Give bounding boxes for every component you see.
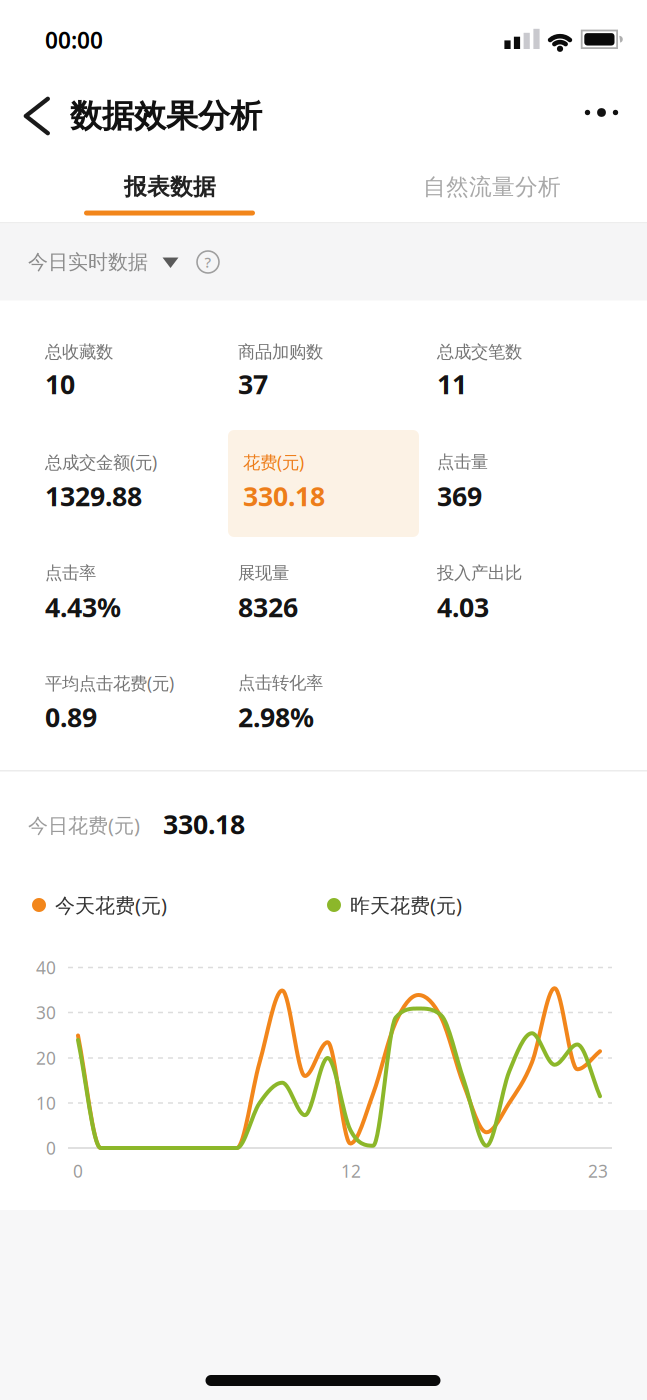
staticText: 总成交金额(元) xyxy=(45,450,157,473)
staticText: 2.98% xyxy=(238,699,314,735)
staticText: 投入产出比 xyxy=(437,562,522,584)
staticText: 1329.88 xyxy=(45,478,142,514)
staticText: 37 xyxy=(238,366,268,402)
button[interactable] xyxy=(9,86,69,146)
staticText: 展现量 xyxy=(238,562,289,584)
staticText: 花费(元) xyxy=(243,450,304,473)
staticText: 40 xyxy=(36,956,56,979)
staticText: 330.18 xyxy=(243,478,325,514)
button[interactable]: 今日实时数据 xyxy=(28,241,188,283)
staticText: 330.18 xyxy=(163,806,245,842)
staticText: 平均点击花费(元) xyxy=(45,671,174,694)
staticText: 4.43% xyxy=(45,589,121,625)
staticText: 10 xyxy=(45,366,75,402)
staticText: 今日花费(元) xyxy=(28,812,140,838)
staticText: 总成交笔数 xyxy=(437,341,522,363)
staticText: 0 xyxy=(46,1136,56,1159)
staticText: 23 xyxy=(588,1159,608,1182)
staticText: 12 xyxy=(341,1159,361,1182)
staticText: 自然流量分析 xyxy=(423,173,561,201)
button[interactable]: ? xyxy=(193,247,223,277)
staticText: 今天花费(元) xyxy=(55,892,167,918)
staticText: 点击率 xyxy=(45,562,96,584)
staticText: 369 xyxy=(437,478,482,514)
staticText: 10 xyxy=(36,1091,56,1114)
staticText: 20 xyxy=(36,1046,56,1069)
staticText: ? xyxy=(204,252,211,272)
staticText: 11 xyxy=(437,366,467,402)
staticText: 报表数据 xyxy=(124,173,216,201)
staticText: 点击量 xyxy=(437,451,488,473)
button[interactable]: 报表数据 xyxy=(30,159,310,215)
staticText: 昨天花费(元) xyxy=(350,892,462,918)
staticText: 今日实时数据 xyxy=(28,250,148,274)
staticText: 数据效果分析 xyxy=(70,96,262,136)
staticText: 0 xyxy=(73,1159,83,1182)
staticText: 4.03 xyxy=(437,589,489,625)
staticText: 30 xyxy=(36,1001,56,1024)
staticText: 0.89 xyxy=(45,699,97,735)
staticText: 00:00 xyxy=(45,25,103,55)
staticText: 点击转化率 xyxy=(238,672,323,694)
button[interactable] xyxy=(576,90,626,135)
staticText: 8326 xyxy=(238,589,298,625)
staticText: 商品加购数 xyxy=(238,341,323,363)
staticText: 总收藏数 xyxy=(45,341,113,363)
button[interactable]: 自然流量分析 xyxy=(342,159,642,215)
